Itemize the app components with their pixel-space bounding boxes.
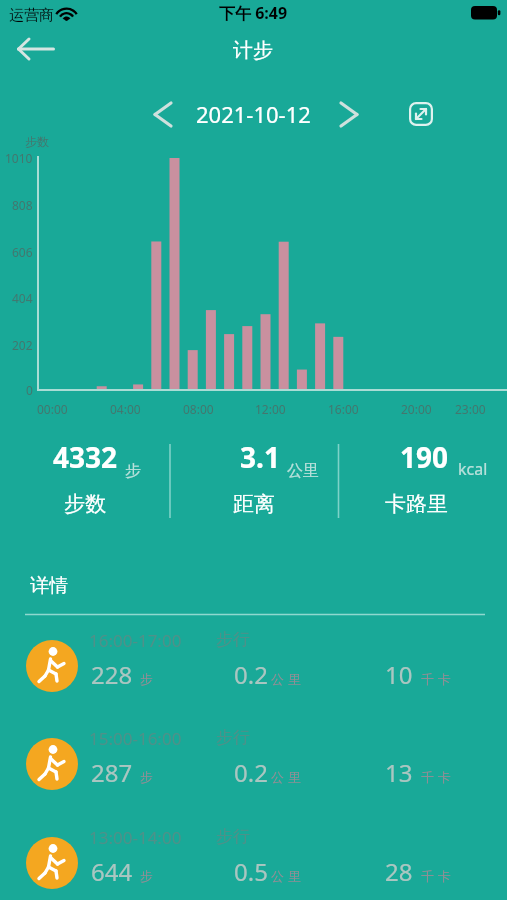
staticText: 08:00 [183, 401, 214, 417]
staticText: 190 [400, 438, 449, 468]
button[interactable] [8, 30, 64, 68]
staticText: 202 [12, 337, 33, 353]
staticText: 公里 [269, 769, 303, 785]
staticText: kcal [458, 458, 488, 480]
staticText: 步 [138, 868, 155, 884]
button[interactable]: 16:00-17:00 [0, 626, 507, 706]
staticText: 228 [91, 658, 133, 691]
button[interactable] [333, 96, 364, 133]
staticText: 23:00 [455, 401, 486, 417]
staticText: 12:00 [255, 401, 286, 417]
staticText: 04:00 [110, 401, 141, 417]
staticText: 287 [91, 756, 133, 789]
staticText: 20:00 [401, 401, 432, 417]
staticText: 4332 [53, 438, 118, 468]
staticText: 0.5 [234, 855, 268, 888]
staticText: 644 [91, 855, 133, 888]
staticText: 0 [26, 382, 33, 398]
button[interactable] [147, 96, 178, 133]
staticText: 千卡 [419, 671, 453, 687]
staticText: 2021-10-12 [196, 99, 311, 129]
staticText: 千卡 [419, 769, 453, 785]
staticText: 步行 [216, 629, 250, 650]
staticText: 公里 [287, 461, 319, 481]
staticText: 步数 [25, 134, 49, 149]
staticText: 下午 6:49 [219, 2, 288, 24]
staticText: 步 [138, 671, 155, 687]
staticText: 13:00-14:00 [89, 826, 182, 849]
staticText: 步行 [216, 727, 250, 748]
staticText: 16:00 [328, 401, 359, 417]
staticText: 距离 [233, 491, 275, 517]
staticText: 13 [385, 756, 413, 789]
button[interactable]: 15:00-16:00 [0, 724, 507, 804]
staticText: 0.2 [234, 658, 268, 691]
staticText: 15:00-16:00 [89, 727, 182, 750]
staticText: 步数 [64, 491, 106, 517]
staticText: 详情 [30, 574, 68, 598]
staticText: 0.2 [234, 756, 268, 789]
staticText: 步行 [216, 826, 250, 847]
staticText: 计步 [233, 38, 273, 63]
staticText: 3.1 [240, 438, 280, 468]
staticText: 404 [12, 290, 33, 306]
staticText: 运营商 [9, 6, 54, 25]
staticText: 10 [385, 658, 413, 691]
staticText: 1010 [5, 150, 33, 166]
staticText: 00:00 [37, 401, 68, 417]
staticText: 606 [12, 244, 33, 260]
staticText: 步 [125, 461, 141, 481]
button[interactable] [402, 95, 440, 132]
staticText: 卡路里 [385, 491, 448, 517]
staticText: 步 [138, 769, 155, 785]
button[interactable]: 13:00-14:00 [0, 823, 507, 900]
staticText: 公里 [269, 671, 303, 687]
staticText: 808 [12, 197, 33, 213]
staticText: 16:00-17:00 [89, 629, 182, 652]
staticText: 公里 [269, 868, 303, 884]
staticText: 28 [385, 855, 413, 888]
staticText: 千卡 [419, 868, 453, 884]
